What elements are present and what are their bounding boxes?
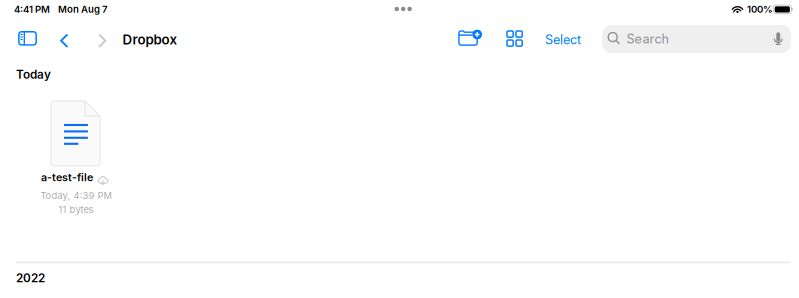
staticText: Select — [545, 32, 581, 47]
button[interactable]: a-test-file — [25, 101, 126, 216]
staticText: Today, 4:39 PM — [40, 190, 111, 201]
button[interactable]: Search — [602, 25, 791, 53]
staticText: 4:41 PM — [14, 3, 50, 15]
staticText: 11 bytes — [58, 204, 93, 215]
staticText: Mon Aug 7 — [58, 3, 108, 15]
staticText: Dropbox — [122, 31, 177, 48]
staticText: 100% — [747, 3, 773, 15]
button[interactable]: Show Sidebar — [12, 25, 43, 52]
staticText: Search — [626, 31, 668, 47]
staticText: 2022 — [16, 271, 45, 285]
staticText: a-test-file — [41, 171, 93, 184]
button[interactable]: Select — [539, 25, 587, 54]
button[interactable]: Change View Options — [501, 25, 528, 52]
button[interactable]: Back — [51, 24, 78, 57]
staticText: Today — [16, 67, 51, 82]
button[interactable]: New Folder — [452, 24, 486, 53]
button[interactable]: Forward — [89, 24, 116, 57]
